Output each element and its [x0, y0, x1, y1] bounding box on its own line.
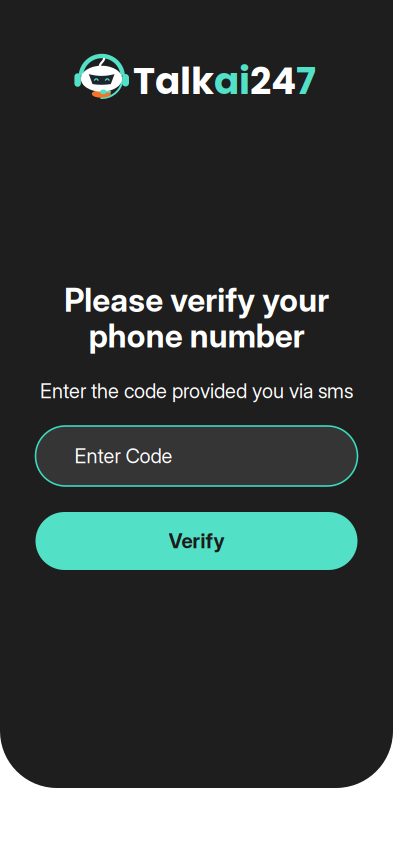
staticText: ai	[214, 55, 250, 107]
staticText: 24	[250, 55, 296, 107]
staticText: Talk	[133, 55, 214, 107]
staticText: Enter Code	[74, 444, 172, 468]
staticText: Please verify your phone number	[64, 282, 329, 354]
button[interactable]: Enter Code	[35, 426, 357, 486]
staticText: Enter the code provided you via sms	[40, 379, 353, 403]
staticText: 7	[296, 55, 316, 107]
staticText: Verify	[168, 529, 224, 553]
button[interactable]: Verify	[35, 512, 357, 570]
